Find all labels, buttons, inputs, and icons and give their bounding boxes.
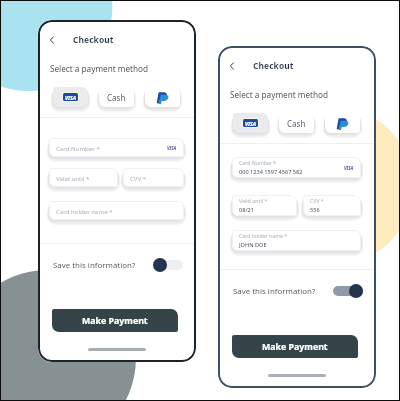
staticText: Card holder name * bbox=[56, 207, 113, 215]
staticText: Valid until * bbox=[56, 174, 90, 182]
staticText: Make Payment bbox=[82, 315, 148, 327]
button[interactable]: Cash bbox=[99, 87, 134, 107]
button[interactable]: Card holder name * bbox=[49, 201, 184, 220]
button[interactable] bbox=[145, 87, 180, 107]
staticText: Checkout bbox=[253, 60, 294, 71]
button[interactable]: VISA bbox=[233, 113, 268, 133]
staticText: VISA bbox=[344, 165, 354, 171]
button[interactable]: VISA bbox=[53, 87, 88, 107]
staticText: JOHN DOE bbox=[239, 241, 267, 249]
button[interactable]: Card Number * bbox=[49, 138, 184, 157]
staticText: Save this information? bbox=[53, 260, 136, 271]
staticText: CVV * bbox=[130, 174, 147, 182]
button[interactable]: Save this information? bbox=[53, 255, 183, 275]
button[interactable]: Card holder name * bbox=[232, 230, 361, 251]
staticText: VISA bbox=[245, 120, 257, 127]
staticText: 000 1234 1597 4567 582 bbox=[239, 168, 303, 176]
button[interactable] bbox=[325, 113, 360, 133]
staticText: Make Payment bbox=[262, 341, 328, 353]
staticText: Cash bbox=[107, 92, 126, 103]
staticText: 556 bbox=[310, 206, 320, 214]
button[interactable]: Back bbox=[43, 31, 61, 49]
staticText: 08/21 bbox=[239, 206, 254, 214]
button[interactable]: Valid until * bbox=[49, 168, 118, 187]
button[interactable]: CVV * bbox=[303, 195, 361, 216]
staticText: CVV * bbox=[310, 197, 324, 204]
staticText: VISA bbox=[65, 94, 77, 101]
button[interactable]: Back bbox=[223, 57, 241, 75]
button[interactable]: Valid until * bbox=[232, 195, 297, 216]
button[interactable]: Save this information? bbox=[233, 281, 363, 301]
staticText: Cash bbox=[287, 118, 306, 129]
staticText: Card Number * bbox=[56, 144, 100, 152]
button[interactable]: Save this information bbox=[333, 284, 363, 298]
staticText: Select a payment method bbox=[230, 89, 329, 100]
button[interactable]: Card Number * bbox=[232, 157, 361, 178]
staticText: Card holder name * bbox=[239, 232, 288, 239]
staticText: Valid until * bbox=[239, 197, 268, 204]
staticText: Save this information? bbox=[233, 286, 316, 297]
button[interactable]: Cash bbox=[279, 113, 314, 133]
staticText: Select a payment method bbox=[50, 63, 149, 74]
button[interactable]: Save this information bbox=[153, 258, 183, 272]
button[interactable]: Make Payment bbox=[52, 309, 178, 332]
staticText: Card Number * bbox=[239, 159, 277, 166]
button[interactable]: CVV * bbox=[123, 168, 184, 187]
button[interactable]: Make Payment bbox=[232, 335, 358, 358]
staticText: VISA bbox=[167, 145, 177, 151]
staticText: Checkout bbox=[73, 34, 114, 45]
